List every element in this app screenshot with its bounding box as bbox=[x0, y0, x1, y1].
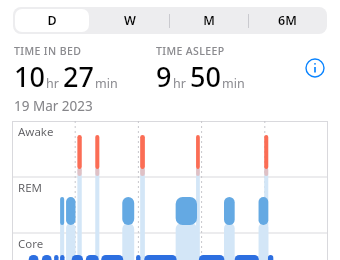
staticText: hr bbox=[173, 75, 186, 92]
staticText: 19 Mar 2023 bbox=[14, 97, 93, 115]
staticText: Awake bbox=[18, 124, 54, 140]
staticText: min bbox=[222, 75, 245, 92]
staticText: TIME IN BED bbox=[14, 44, 82, 58]
staticText: TIME ASLEEP bbox=[156, 44, 225, 58]
staticText: 9 bbox=[156, 58, 172, 95]
staticText: REM bbox=[18, 180, 42, 196]
button[interactable]: 6M bbox=[248, 7, 327, 34]
staticText: min bbox=[95, 75, 118, 92]
staticText: M bbox=[203, 12, 215, 29]
staticText: 10 bbox=[14, 58, 45, 95]
button[interactable]: W bbox=[91, 7, 169, 34]
staticText: hr bbox=[46, 75, 59, 92]
staticText: 50 bbox=[190, 58, 221, 95]
staticText: D bbox=[47, 12, 57, 29]
button[interactable]: D bbox=[13, 7, 91, 34]
button[interactable]: M bbox=[169, 7, 248, 34]
button[interactable]: About sleep data bbox=[302, 55, 328, 81]
staticText: W bbox=[124, 12, 136, 29]
staticText: Core bbox=[18, 236, 44, 252]
staticText: 6M bbox=[278, 12, 297, 29]
staticText: 27 bbox=[63, 58, 94, 95]
